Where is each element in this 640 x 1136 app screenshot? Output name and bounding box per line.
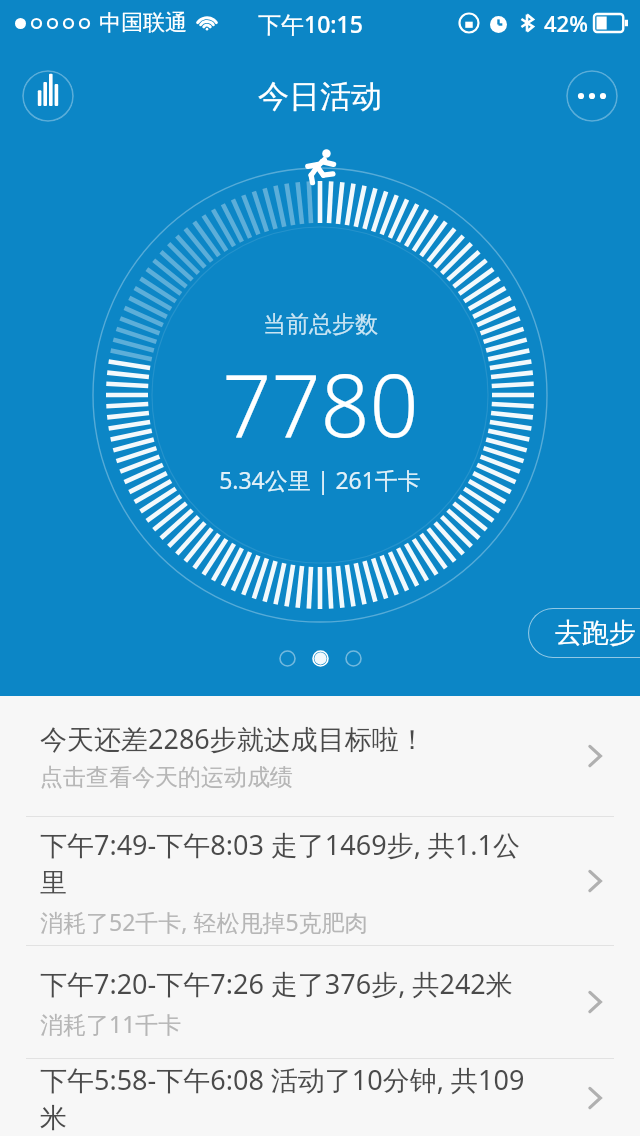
staticText: 中国联通 xyxy=(99,9,187,37)
staticText: 今天还差2286步就达成目标啦！ xyxy=(40,720,426,757)
button[interactable]: 今天还差2286步就达成目标啦！ xyxy=(0,696,640,816)
button[interactable]: 更多 xyxy=(566,70,618,122)
staticText: 点击查看今天的运动成绩 xyxy=(40,763,293,792)
staticText: 5.34公里 | 261千卡 xyxy=(219,464,421,495)
button[interactable]: 下午7:49-下午8:03 走了1469步, 共1.1公 里 xyxy=(0,817,640,945)
staticText: 当前总步数 xyxy=(263,310,378,339)
staticText: 42% xyxy=(544,8,588,38)
staticText: 去跑步 xyxy=(555,616,636,650)
staticText: 消耗了11千卡 xyxy=(40,1008,182,1039)
staticText: 下午7:20-下午7:26 走了376步, 共242米 xyxy=(40,965,513,1002)
button[interactable]: 下午5:58-下午6:08 活动了10分钟, 共109 米 xyxy=(0,1059,640,1136)
button[interactable]: 去跑步 xyxy=(528,608,640,658)
staticText: 7780 xyxy=(222,345,419,462)
staticText: 下午7:49-下午8:03 走了1469步, 共1.1公 里 xyxy=(40,826,521,900)
button[interactable]: 下午7:20-下午7:26 走了376步, 共242米 xyxy=(0,946,640,1058)
staticText: 下午5:58-下午6:08 活动了10分钟, 共109 米 xyxy=(40,1061,525,1135)
staticText: 今日活动 xyxy=(258,77,382,116)
staticText: 消耗了52千卡, 轻松甩掉5克肥肉 xyxy=(40,906,368,937)
button[interactable]: 统计 xyxy=(22,70,74,122)
staticText: 下午10:15 xyxy=(258,8,363,39)
